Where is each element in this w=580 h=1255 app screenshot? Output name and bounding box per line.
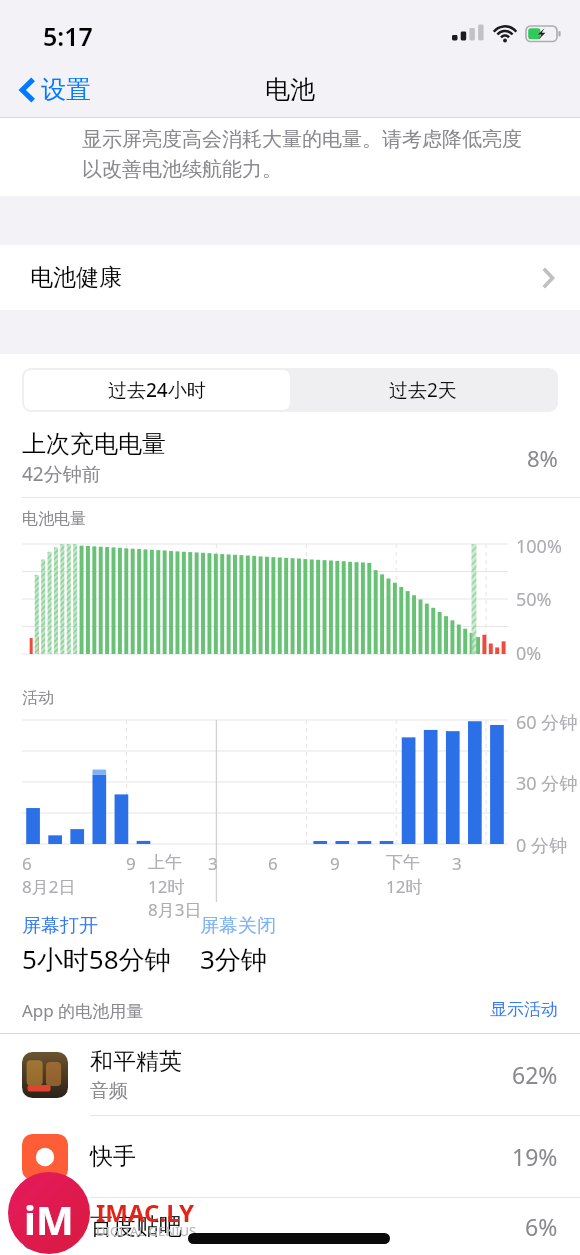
button[interactable]: 电池健康 — [0, 245, 580, 310]
staticText: 下午 — [386, 852, 420, 873]
staticText: 62% — [512, 1059, 558, 1090]
button[interactable]: 百度贴吧 — [0, 1198, 580, 1255]
staticText: 电池健康 — [30, 263, 122, 292]
staticText: 屏幕打开 — [22, 914, 98, 938]
staticText: 3 — [452, 852, 462, 875]
staticText: 活动 — [22, 688, 54, 708]
staticText: 3分钟 — [200, 941, 267, 977]
staticText: 设置 — [41, 74, 91, 105]
button[interactable]: 设置 — [14, 68, 97, 111]
staticText: DIGITAL GENIUS — [96, 1222, 197, 1240]
staticText: 快手 — [90, 1142, 136, 1171]
staticText: 12时 — [148, 875, 185, 898]
staticText: IMAC.LY — [96, 1196, 194, 1229]
staticText: 音频 — [90, 1079, 128, 1103]
staticText: 以改善电池续航能力。 — [82, 157, 282, 182]
staticText: iM — [24, 1192, 74, 1246]
staticText: 显示屏亮度高会消耗大量的电量。请考虑降低亮度 — [82, 127, 522, 152]
staticText: 0% — [516, 641, 542, 666]
staticText: 9 — [330, 852, 340, 875]
staticText: 显示活动 — [490, 999, 558, 1020]
staticText: 6 — [268, 852, 278, 875]
staticText: 上次充电电量 — [22, 429, 166, 459]
staticText: 5小时58分钟 — [22, 941, 171, 977]
staticText: 42分钟前 — [22, 461, 101, 487]
staticText: 过去24小时 — [108, 377, 206, 403]
staticText: 电池电量 — [22, 509, 86, 529]
staticText: 过去2天 — [389, 377, 457, 403]
staticText: 0 分钟 — [516, 833, 567, 858]
button[interactable]: 快手 — [0, 1116, 580, 1197]
staticText: 6% — [525, 1211, 558, 1242]
button[interactable]: 过去24小时 — [24, 370, 290, 410]
staticText: 百度贴吧 — [90, 1212, 182, 1241]
staticText: 电池 — [265, 74, 315, 105]
button[interactable]: 显示活动 — [490, 999, 558, 1020]
staticText: 30 分钟 — [516, 771, 578, 796]
staticText: 9 — [126, 852, 136, 875]
staticText: App 的电池用量 — [22, 999, 144, 1022]
staticText: 和平精英 — [90, 1047, 182, 1076]
staticText: 100% — [516, 534, 562, 559]
button[interactable]: 和平精英 — [0, 1034, 580, 1115]
staticText: 5:17 — [43, 19, 93, 53]
staticText: 12时 — [386, 875, 423, 898]
staticText: 8% — [527, 443, 558, 473]
staticText: 6 — [22, 852, 32, 875]
staticText: 屏幕关闭 — [200, 914, 276, 938]
staticText: 8月2日 — [22, 875, 76, 898]
staticText: 19% — [512, 1141, 558, 1172]
button[interactable]: 过去2天 — [290, 370, 556, 410]
staticText: 60 分钟 — [516, 710, 578, 735]
staticText: 8月3日 — [148, 898, 202, 921]
staticText: 上午 — [148, 852, 182, 873]
staticText: 50% — [516, 587, 552, 612]
staticText: 3 — [208, 852, 218, 875]
